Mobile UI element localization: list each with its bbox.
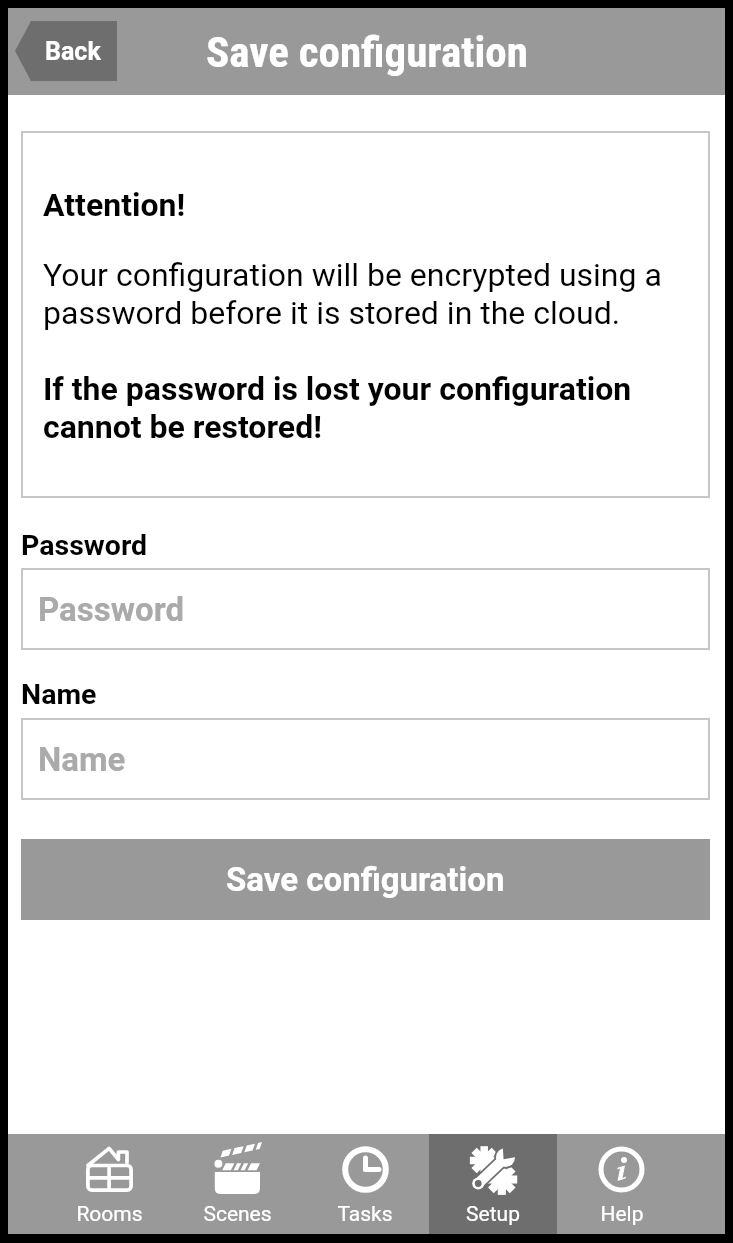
staticText: Rooms [76,1202,143,1227]
staticText: Your configuration will be encrypted usi… [43,256,688,332]
staticText: Name [38,740,126,779]
staticText: Tasks [337,1202,393,1227]
staticText: Back [45,37,101,66]
staticText: Help [600,1202,644,1227]
staticText: Scenes [203,1202,272,1227]
staticText: Name [21,678,97,711]
staticText: Attention! [43,186,186,224]
button[interactable]: Password [21,568,710,650]
button[interactable]: Rooms [45,1134,173,1234]
button[interactable]: Tasks [301,1134,429,1234]
button[interactable]: Scenes [173,1134,301,1234]
button[interactable]: Help [557,1134,685,1234]
button[interactable]: Setup [429,1134,557,1234]
button[interactable]: Name [21,718,710,800]
staticText: Password [21,529,148,562]
staticText: If the password is lost your configurati… [43,370,688,446]
staticText: Save configuration [226,860,505,899]
staticText: Setup [466,1202,520,1227]
staticText: Password [38,590,185,629]
staticText: Save configuration [206,27,528,77]
button[interactable]: Save configuration [21,839,710,920]
button[interactable]: Back [15,21,117,81]
